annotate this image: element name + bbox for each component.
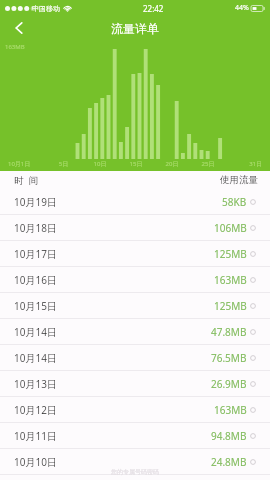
staticText: 58KB bbox=[222, 195, 247, 209]
staticText: 47.8MB bbox=[211, 325, 247, 339]
button[interactable]: 10月16日 bbox=[0, 267, 270, 293]
staticText: 10月1日 bbox=[8, 160, 45, 168]
staticText: 10月16日 bbox=[14, 273, 57, 287]
staticText: 流量详单 bbox=[111, 21, 159, 36]
staticText: 24.8MB bbox=[211, 455, 247, 469]
button[interactable]: 10月18日 bbox=[0, 215, 270, 241]
staticText: 时 间 bbox=[14, 174, 38, 187]
button[interactable]: 10月11日 bbox=[0, 423, 270, 449]
staticText: 使用流量 bbox=[220, 174, 258, 186]
staticText: 10月18日 bbox=[14, 221, 57, 235]
staticText: 163MB bbox=[214, 403, 247, 417]
button[interactable]: 10月19日 bbox=[0, 189, 270, 215]
button[interactable]: Back bbox=[0, 14, 38, 42]
staticText: 中国移动 bbox=[32, 4, 60, 13]
staticText: 44% bbox=[235, 3, 249, 13]
button[interactable]: 10月10日 bbox=[0, 449, 270, 475]
staticText: 163MB bbox=[5, 43, 25, 51]
staticText: 106MB bbox=[214, 221, 247, 235]
staticText: 125MB bbox=[214, 247, 247, 261]
button[interactable]: 10月14日 bbox=[0, 345, 270, 371]
button[interactable]: 10月17日 bbox=[0, 241, 270, 267]
staticText: 5日 bbox=[45, 160, 82, 168]
button[interactable]: 10月13日 bbox=[0, 371, 270, 397]
staticText: 125MB bbox=[214, 299, 247, 313]
button[interactable]: 10月14日 bbox=[0, 319, 270, 345]
staticText: 10月13日 bbox=[14, 377, 57, 391]
staticText: 26.9MB bbox=[211, 377, 247, 391]
staticText: 20日 bbox=[154, 160, 190, 168]
staticText: 您的专属号码密码 bbox=[111, 468, 159, 476]
staticText: 76.5MB bbox=[211, 351, 247, 365]
staticText: 10月14日 bbox=[14, 351, 57, 365]
staticText: 15日 bbox=[118, 160, 154, 168]
staticText: 10月12日 bbox=[14, 403, 57, 417]
staticText: 10月10日 bbox=[14, 455, 57, 469]
staticText: 25日 bbox=[190, 160, 226, 168]
staticText: 94.8MB bbox=[211, 429, 247, 443]
staticText: 10月11日 bbox=[14, 429, 57, 443]
staticText: 31日 bbox=[226, 160, 262, 168]
staticText: 10月14日 bbox=[14, 325, 57, 339]
staticText: 163MB bbox=[214, 273, 247, 287]
staticText: 10月15日 bbox=[14, 299, 57, 313]
staticText: 10月17日 bbox=[14, 247, 57, 261]
staticText: 10日 bbox=[82, 160, 118, 168]
staticText: 10月19日 bbox=[14, 195, 57, 209]
button[interactable]: 10月12日 bbox=[0, 397, 270, 423]
staticText: 22:42 bbox=[143, 3, 164, 14]
button[interactable]: 10月15日 bbox=[0, 293, 270, 319]
